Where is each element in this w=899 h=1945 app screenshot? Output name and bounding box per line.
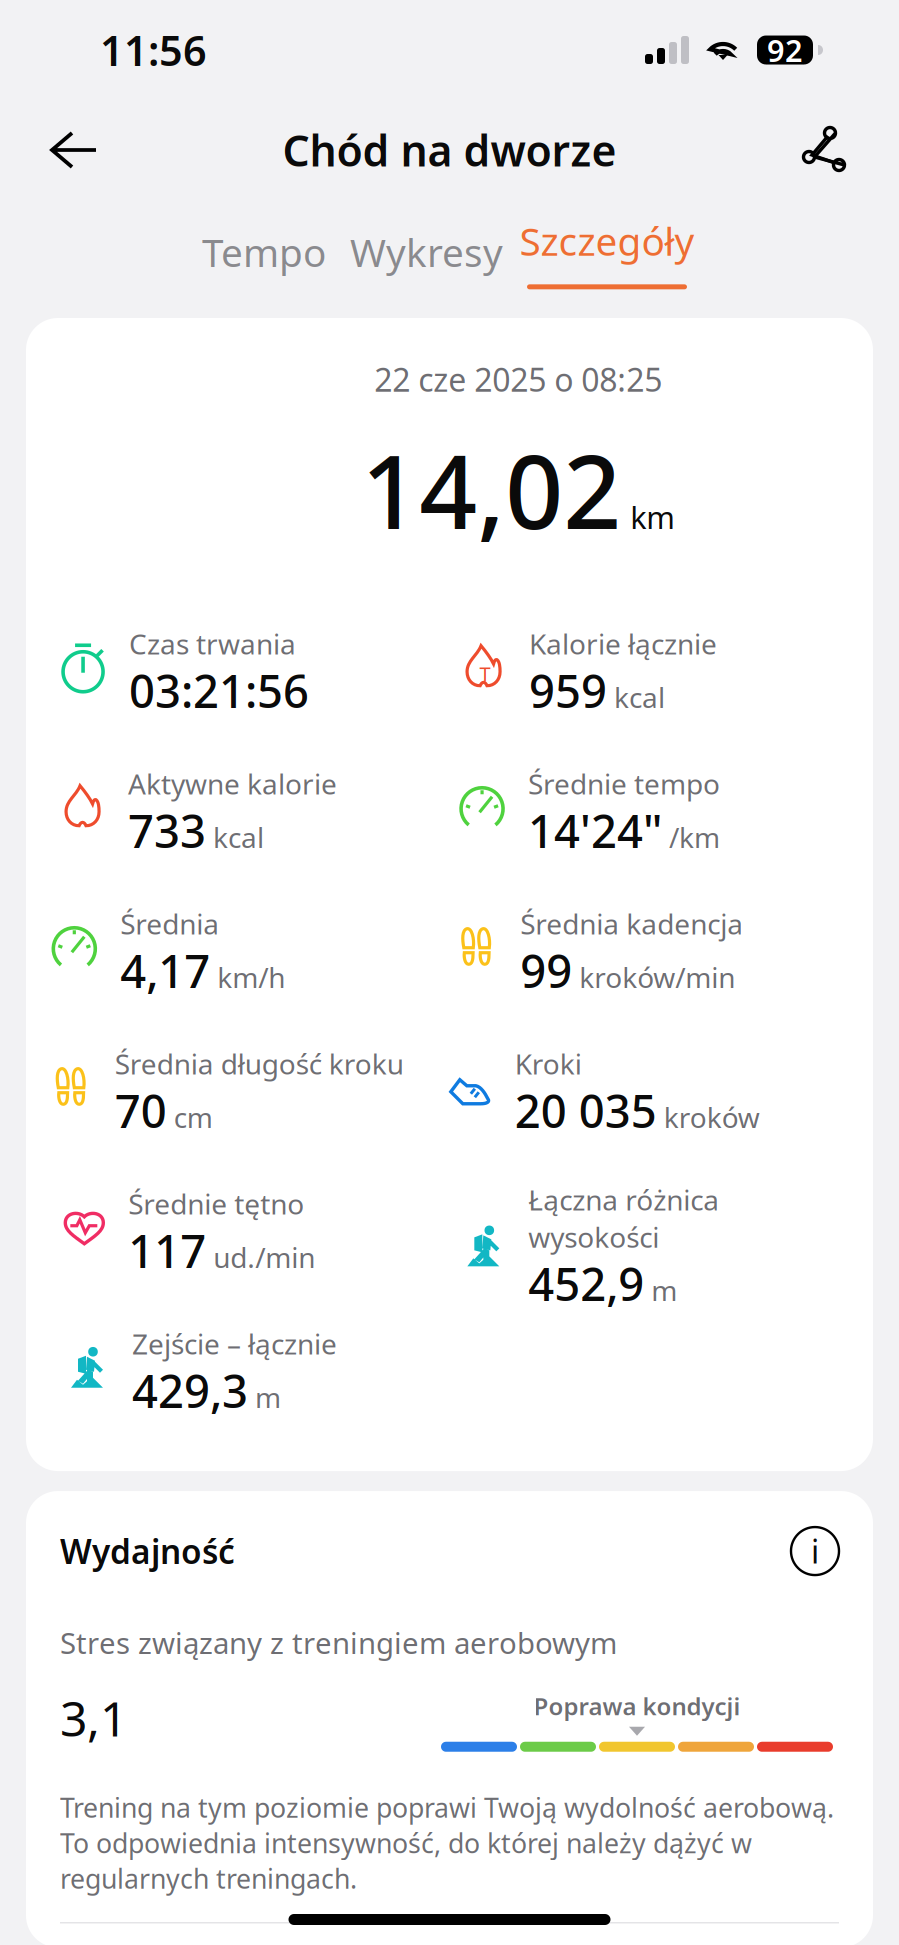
staticText: Zejście – łącznie (132, 1325, 337, 1362)
staticText: 22 cze 2025 o 08:25 (374, 358, 662, 400)
staticText: kroków (664, 1098, 760, 1136)
staticText: 03:21:56 (129, 660, 309, 720)
button[interactable]: Trasa (781, 108, 865, 192)
staticText: Kroki (515, 1045, 582, 1082)
staticText: Poprawa kondycji (533, 1690, 740, 1722)
staticText: km (630, 497, 675, 537)
staticText: Średnia kadencja (520, 905, 743, 942)
staticText: Średnie tempo (528, 765, 720, 802)
staticText: 11:56 (100, 23, 207, 77)
staticText: i (811, 1530, 819, 1572)
staticText: 92 (767, 30, 803, 70)
staticText: 14,02 (361, 422, 621, 557)
button[interactable]: Wstecz (34, 108, 118, 192)
staticText: Wykresy (350, 226, 503, 278)
staticText: 452,9 (528, 1253, 644, 1314)
staticText: Chód na dworze (282, 122, 616, 178)
staticText: Czas trwania (129, 625, 296, 662)
staticText: cm (174, 1098, 213, 1136)
staticText: 3,1 (60, 1686, 127, 1750)
staticText: Aktywne kalorie (128, 765, 337, 802)
staticText: m (255, 1378, 281, 1416)
staticText: 99 (520, 940, 572, 1000)
staticText: Średnia (120, 905, 219, 942)
staticText: 70 (115, 1080, 167, 1140)
staticText: kroków/min (579, 958, 735, 996)
staticText: 14'24" (528, 800, 662, 860)
staticText: Średnia długość kroku (115, 1045, 404, 1082)
button[interactable]: Tempo (190, 217, 338, 287)
button[interactable]: Szczegóły (515, 215, 699, 289)
staticText: 429,3 (132, 1360, 248, 1420)
staticText: Stres związany z treningiem aerobowym (60, 1623, 617, 1662)
staticText: Tempo (202, 226, 326, 278)
staticText: kcal (614, 678, 665, 716)
button[interactable]: Informacje (791, 1527, 839, 1575)
staticText: Łączna różnica wysokości (528, 1181, 719, 1255)
staticText: m (651, 1272, 677, 1309)
staticText: Wydajność (60, 1529, 235, 1573)
staticText: 20 035 (515, 1080, 657, 1140)
staticText: kcal (213, 818, 264, 856)
staticText: 959 (529, 660, 607, 720)
staticText: 733 (128, 800, 206, 860)
staticText: 4,17 (120, 940, 210, 1000)
staticText: ud./min (213, 1238, 315, 1276)
staticText: Kalorie łącznie (529, 625, 717, 662)
staticText: Trening na tym poziomie poprawi Twoją wy… (60, 1790, 834, 1896)
staticText: km/h (217, 958, 285, 996)
button[interactable]: Wykresy (338, 217, 515, 287)
staticText: Szczegóły (519, 215, 694, 266)
staticText: Średnie tętno (128, 1185, 304, 1222)
staticText: 117 (128, 1220, 206, 1280)
staticText: /km (669, 818, 720, 856)
staticText: T (480, 660, 491, 687)
